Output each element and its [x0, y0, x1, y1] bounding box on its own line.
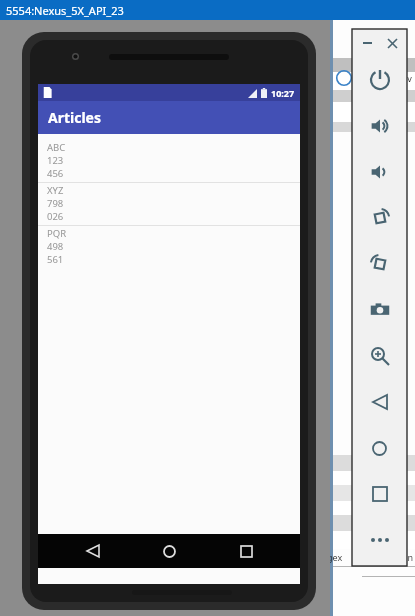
- staticText: PQR: [47, 227, 67, 240]
- button[interactable]: PQR: [38, 226, 300, 268]
- button[interactable]: Overview: [352, 471, 407, 517]
- staticText: 498: [47, 240, 64, 253]
- staticText: 10:27: [271, 87, 295, 99]
- button[interactable]: Volume down: [352, 149, 407, 195]
- staticText: ABC: [47, 141, 66, 154]
- button[interactable]: XYZ: [38, 183, 300, 225]
- staticText: 026: [47, 210, 64, 223]
- button[interactable]: 5554:Nexus_5X_API_23: [0, 0, 415, 20]
- button[interactable]: More: [352, 517, 407, 563]
- button[interactable]: Back: [71, 534, 115, 568]
- button[interactable]: Volume up: [352, 103, 407, 149]
- button[interactable]: Rotate right: [352, 241, 407, 287]
- button[interactable]: Power: [352, 57, 407, 103]
- button[interactable]: Minimize: [357, 33, 377, 53]
- button[interactable]: Take screenshot: [352, 287, 407, 333]
- staticText: jav: [400, 72, 412, 84]
- button[interactable]: Recent apps: [224, 534, 268, 568]
- staticText: 5554:Nexus_5X_API_23: [6, 3, 124, 18]
- staticText: 456: [47, 167, 64, 180]
- button[interactable]: Zoom: [352, 333, 407, 379]
- button[interactable]: Home: [352, 425, 407, 471]
- button[interactable]: Close: [382, 33, 402, 53]
- button[interactable]: Articles: [38, 101, 300, 134]
- staticText: 123: [47, 154, 64, 167]
- staticText: 561: [47, 253, 64, 266]
- button[interactable]: Back: [352, 379, 407, 425]
- button[interactable]: ABC: [38, 140, 300, 182]
- staticText: 798: [47, 197, 64, 210]
- staticText: Articles: [48, 108, 101, 127]
- staticText: XYZ: [47, 184, 64, 197]
- staticText: on: [402, 551, 414, 563]
- staticText: gex: [327, 551, 343, 563]
- button[interactable]: Rotate left: [352, 195, 407, 241]
- button[interactable]: Home: [147, 534, 191, 568]
